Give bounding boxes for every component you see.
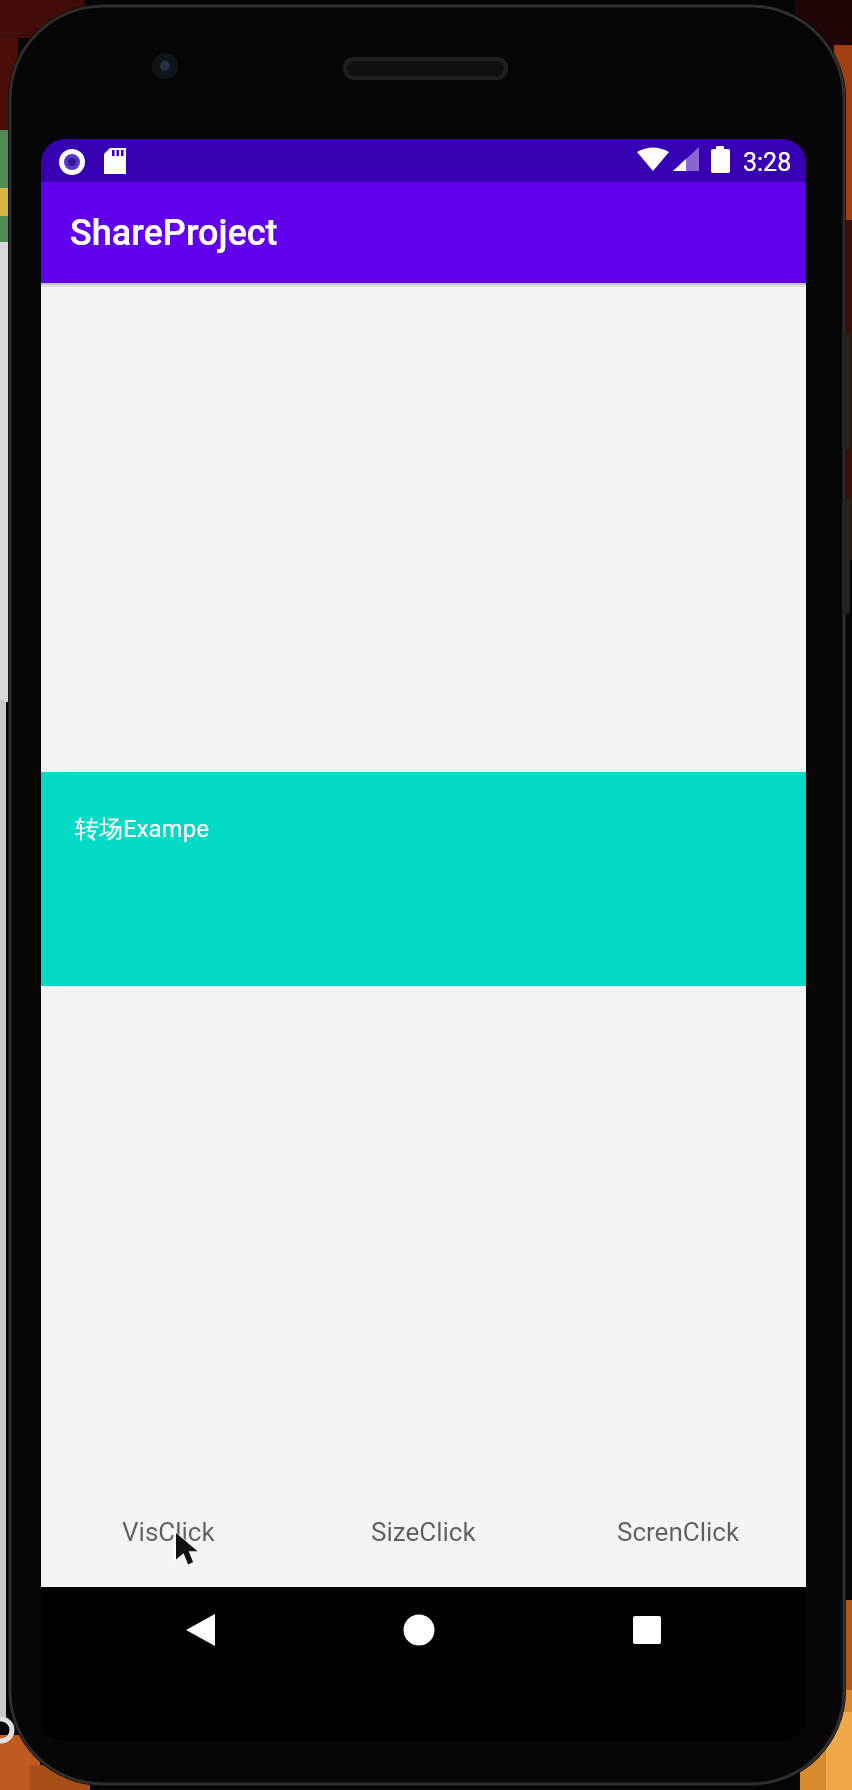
button[interactable]: SizeClick	[296, 1477, 551, 1587]
button[interactable]	[160, 1590, 240, 1670]
button[interactable]	[379, 1590, 459, 1670]
staticText: VisClick	[122, 1517, 215, 1547]
staticText: 转场Exampe	[75, 814, 209, 844]
button[interactable]	[607, 1590, 687, 1670]
staticText: ShareProject	[70, 212, 278, 254]
button[interactable]: ScrenClick	[551, 1477, 806, 1587]
staticText: 3:28	[743, 148, 792, 177]
button[interactable]: 转场Exampe	[41, 772, 806, 986]
staticText: SizeClick	[371, 1517, 476, 1547]
button[interactable]: VisClick	[41, 1477, 296, 1587]
staticText: ScrenClick	[617, 1517, 740, 1547]
